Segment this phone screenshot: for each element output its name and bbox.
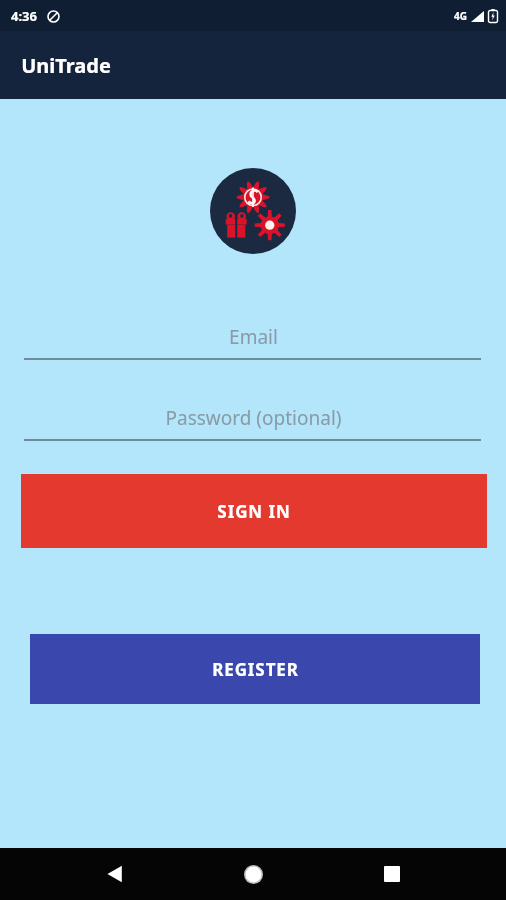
other: UniTrade logo <box>210 168 296 254</box>
button[interactable]: Email <box>0 322 506 360</box>
staticText: REGISTER <box>212 658 299 681</box>
button[interactable]: Password (optional) <box>0 403 506 441</box>
button[interactable]: Home <box>229 850 277 898</box>
button[interactable]: REGISTER <box>30 634 480 704</box>
staticText: UniTrade <box>21 52 111 79</box>
button[interactable]: SIGN IN <box>21 474 487 548</box>
button[interactable]: Back <box>91 850 139 898</box>
button[interactable]: Recent apps <box>368 850 416 898</box>
staticText: 4:36 <box>11 7 37 25</box>
staticText: Email <box>229 324 278 350</box>
staticText: 4G <box>454 9 467 23</box>
staticText: SIGN IN <box>217 500 291 523</box>
staticText: Password (optional) <box>165 405 342 431</box>
